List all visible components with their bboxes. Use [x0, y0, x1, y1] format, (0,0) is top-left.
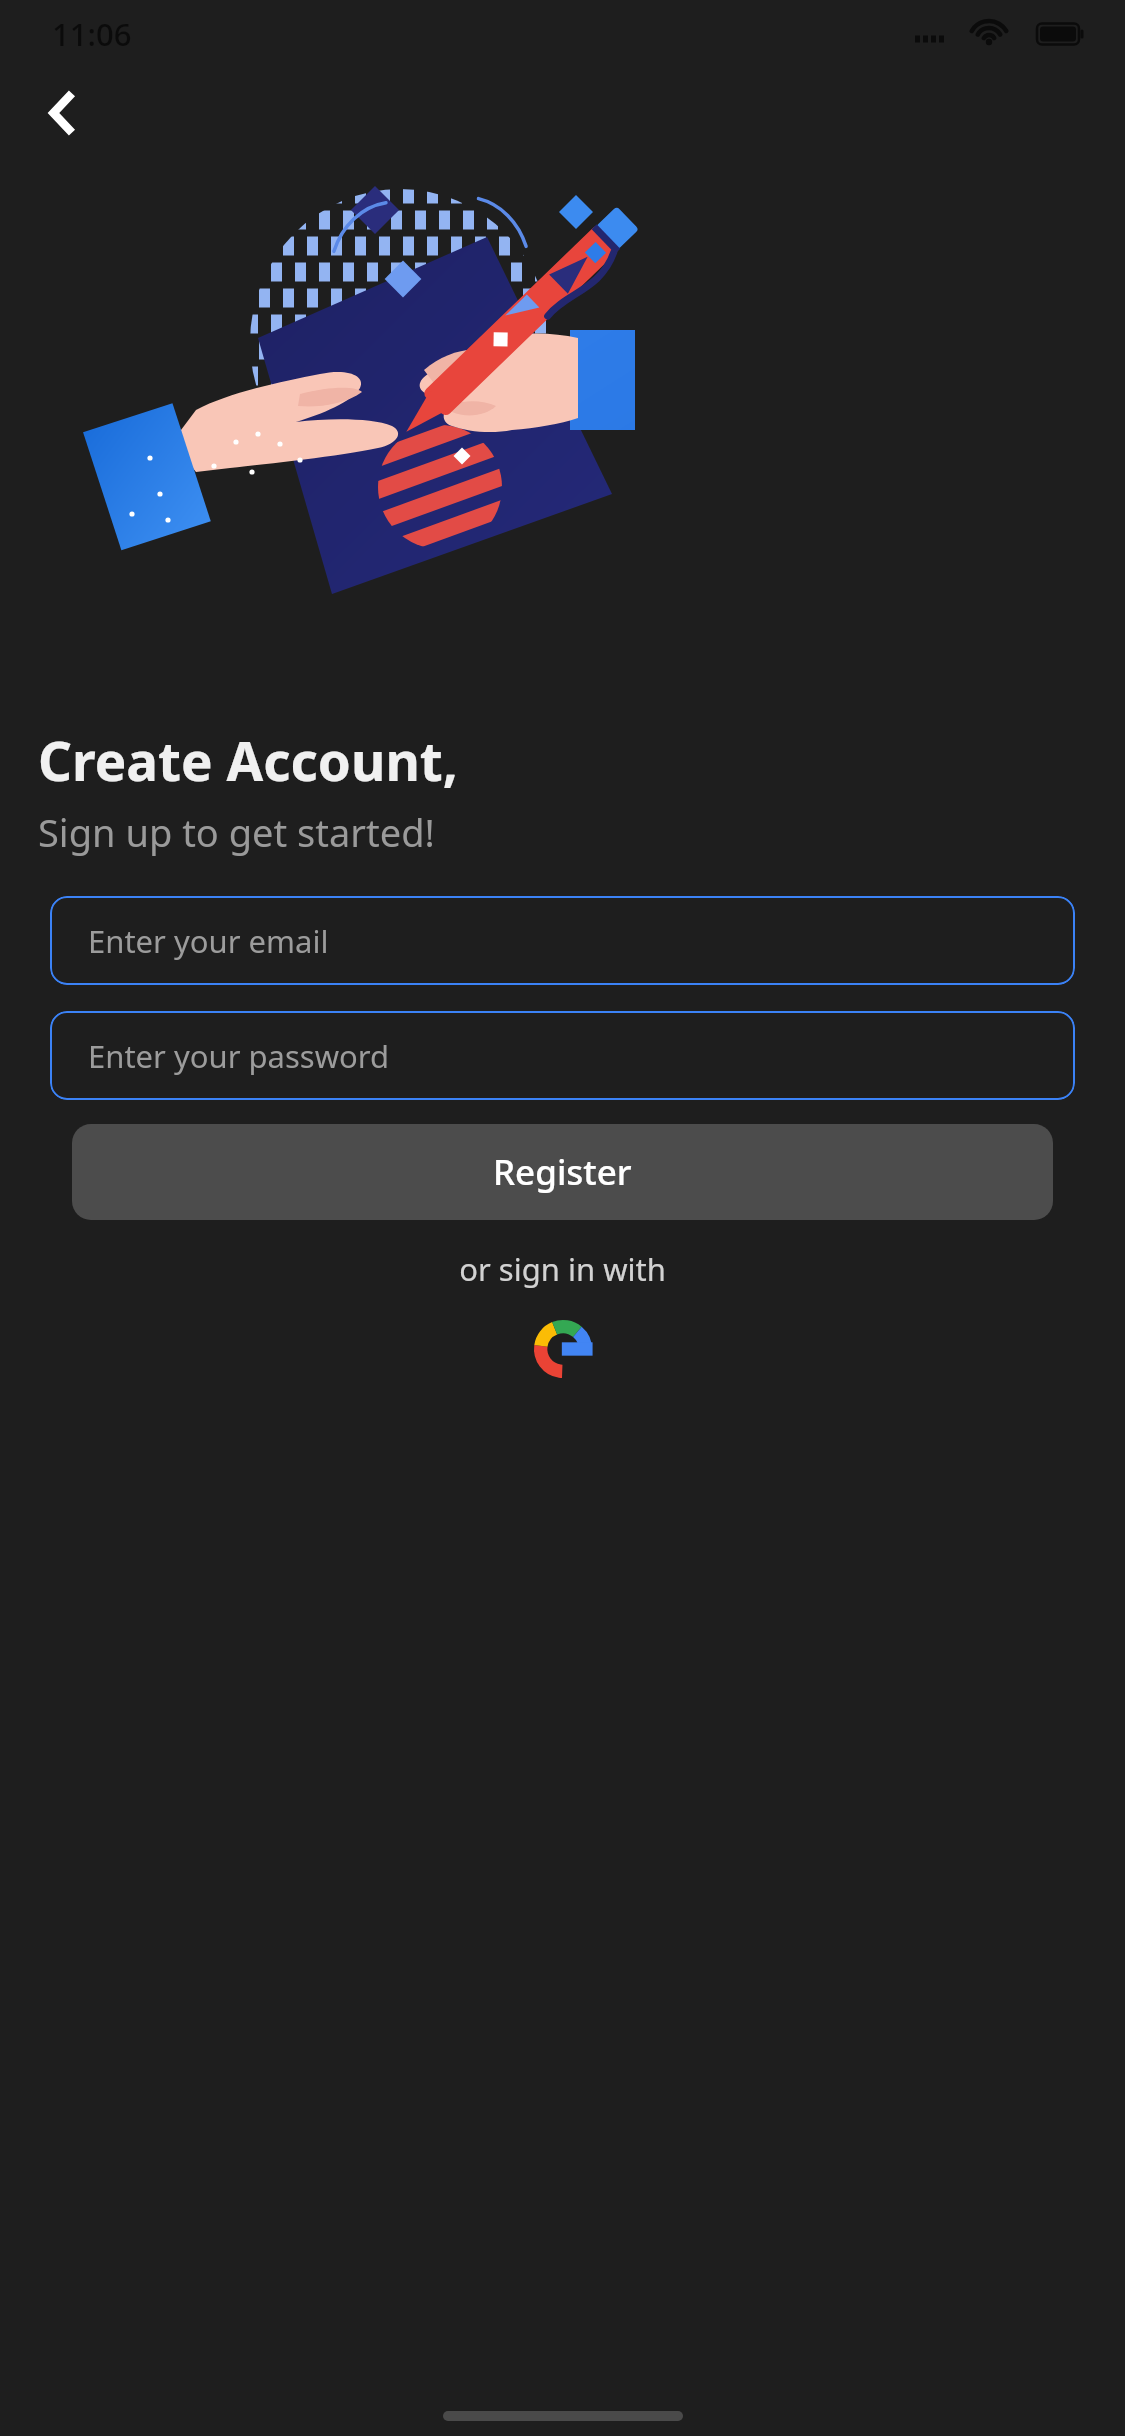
button[interactable]: Enter your password: [50, 1011, 1075, 1100]
staticText: Enter your password: [88, 1035, 390, 1077]
button[interactable]: Back: [36, 84, 94, 142]
staticText: Register: [493, 1148, 632, 1196]
staticText: Enter your email: [88, 920, 329, 962]
staticText: or sign in with: [459, 1248, 666, 1290]
staticText: Create Account,: [38, 724, 458, 796]
button[interactable]: Sign in with Google: [526, 1312, 600, 1386]
staticText: Sign up to get started!: [38, 806, 435, 858]
button[interactable]: Enter your email: [50, 896, 1075, 985]
staticText: 11:06: [52, 13, 132, 55]
button[interactable]: Register: [72, 1124, 1053, 1220]
